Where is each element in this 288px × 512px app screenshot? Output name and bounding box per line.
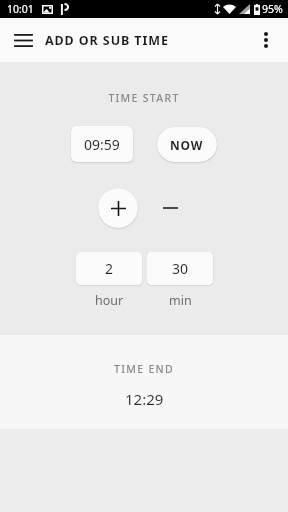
staticText: 2 [105,259,114,278]
staticText: TIME START [108,91,180,105]
staticText: 30 [172,259,189,278]
staticText: 12:29 [125,389,164,409]
button[interactable]: More options [249,23,283,57]
button[interactable]: 09:59 [71,126,133,162]
staticText: 10:01 [7,2,34,16]
staticText: 95% [262,2,283,16]
staticText: hour [95,292,124,309]
button[interactable]: Add time [98,188,138,228]
staticText: ADD OR SUB TIME [45,32,169,49]
button[interactable]: 2 [76,252,142,285]
button[interactable]: 30 [147,252,213,285]
staticText: 09:59 [84,135,120,154]
staticText: TIME END [114,362,174,376]
button[interactable]: NOW [157,127,217,162]
staticText: NOW [170,137,204,153]
button[interactable]: Subtract time [150,188,190,228]
staticText: min [169,292,192,309]
button[interactable]: Open navigation menu [6,23,40,57]
